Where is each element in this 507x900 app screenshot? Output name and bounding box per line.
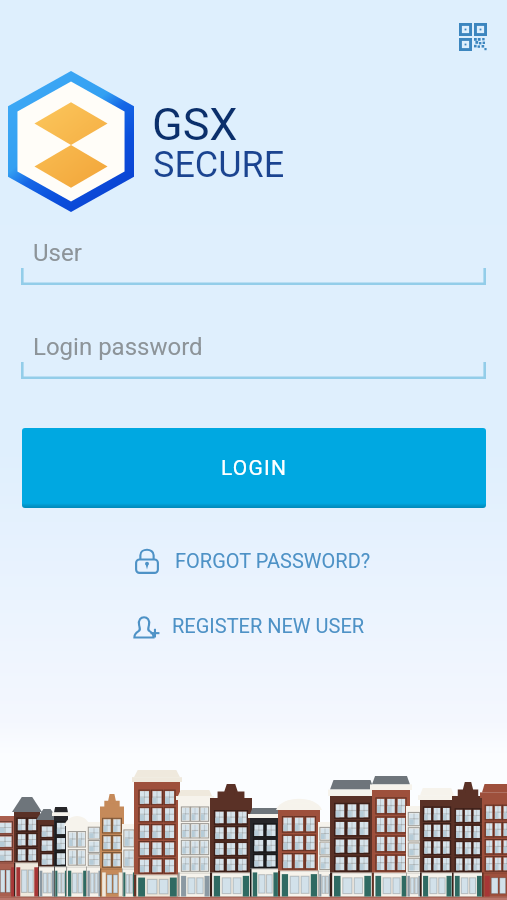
button[interactable]: Scan QR code (445, 9, 501, 65)
staticText: SECURE (153, 144, 285, 186)
button[interactable]: FORGOT PASSWORD? (134, 538, 379, 583)
staticText: GSX (152, 98, 238, 151)
staticText: FORGOT PASSWORD? (175, 549, 371, 572)
button[interactable]: Login password (21, 333, 486, 379)
staticText: User (33, 239, 82, 267)
staticText: Login password (33, 333, 203, 361)
button[interactable]: REGISTER NEW USER (132, 603, 377, 648)
button[interactable]: LOGIN (22, 428, 486, 508)
staticText: REGISTER NEW USER (172, 614, 365, 637)
staticText: LOGIN (221, 456, 288, 481)
button[interactable]: User (21, 239, 486, 285)
